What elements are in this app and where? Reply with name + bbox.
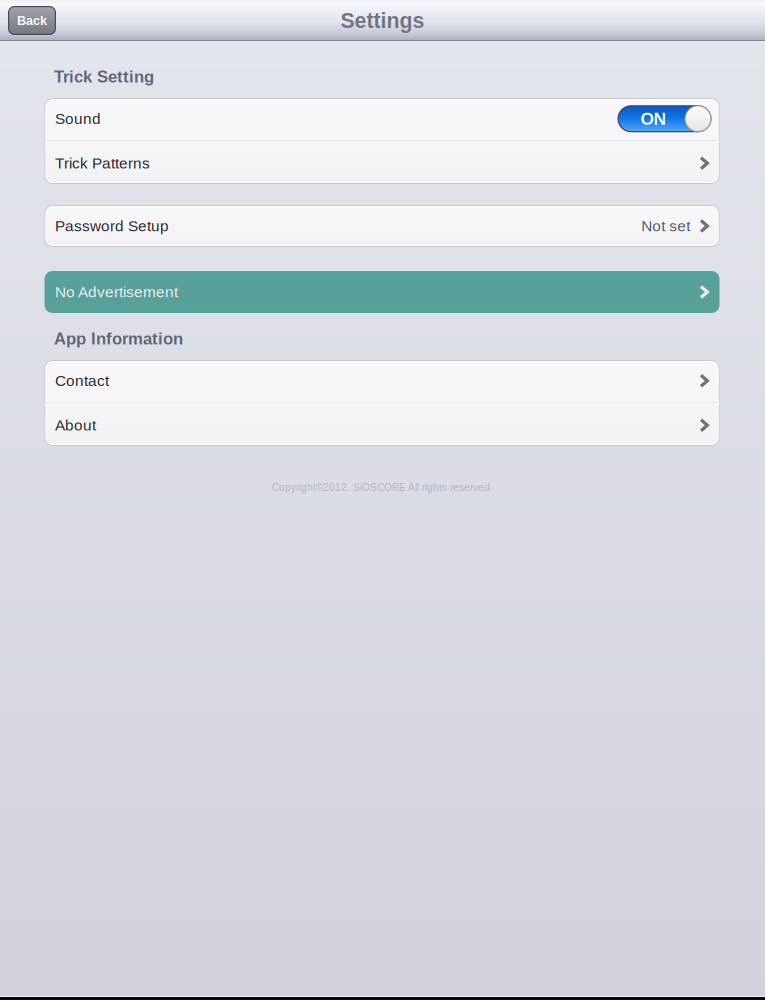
button[interactable]: Back [8,6,56,35]
staticText: ON [640,109,666,128]
button[interactable]: Password Setup [44,205,719,247]
button[interactable]: About [44,404,719,446]
staticText: Contact [55,372,109,389]
staticText: Password Setup [55,217,169,234]
staticText: Trick Patterns [55,155,150,172]
button[interactable]: Sound [617,105,711,132]
button[interactable]: Contact [44,360,719,401]
staticText: Not set [641,217,690,234]
staticText: Back [17,13,47,28]
staticText: Copyright©2012. SiOSCORE All rights rese… [272,482,493,493]
staticText: Settings [340,9,424,32]
staticText: Trick Setting [54,67,154,86]
staticText: App Information [54,329,183,348]
staticText: Sound [55,110,101,127]
button[interactable]: No Advertisement [44,271,719,313]
staticText: About [55,417,96,434]
staticText: No Advertisement [55,283,178,300]
button[interactable]: Trick Patterns [44,142,719,184]
